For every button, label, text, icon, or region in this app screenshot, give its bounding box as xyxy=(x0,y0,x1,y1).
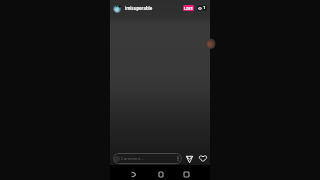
staticText: LIVE xyxy=(184,6,193,11)
button[interactable]: Share xyxy=(185,154,194,163)
button[interactable]: Comment... xyxy=(113,153,182,164)
button[interactable] xyxy=(113,4,122,13)
button[interactable]: Like xyxy=(198,154,207,163)
button[interactable]: 1 xyxy=(198,5,206,11)
button[interactable]: Recents xyxy=(182,170,191,179)
staticText: Comment... xyxy=(121,156,144,162)
button[interactable]: Back xyxy=(129,170,138,179)
button[interactable]: imisuperable xyxy=(125,5,153,11)
button[interactable]: LIVE xyxy=(183,5,194,11)
staticText: 1 xyxy=(203,5,206,11)
button[interactable]: Home xyxy=(156,170,165,179)
